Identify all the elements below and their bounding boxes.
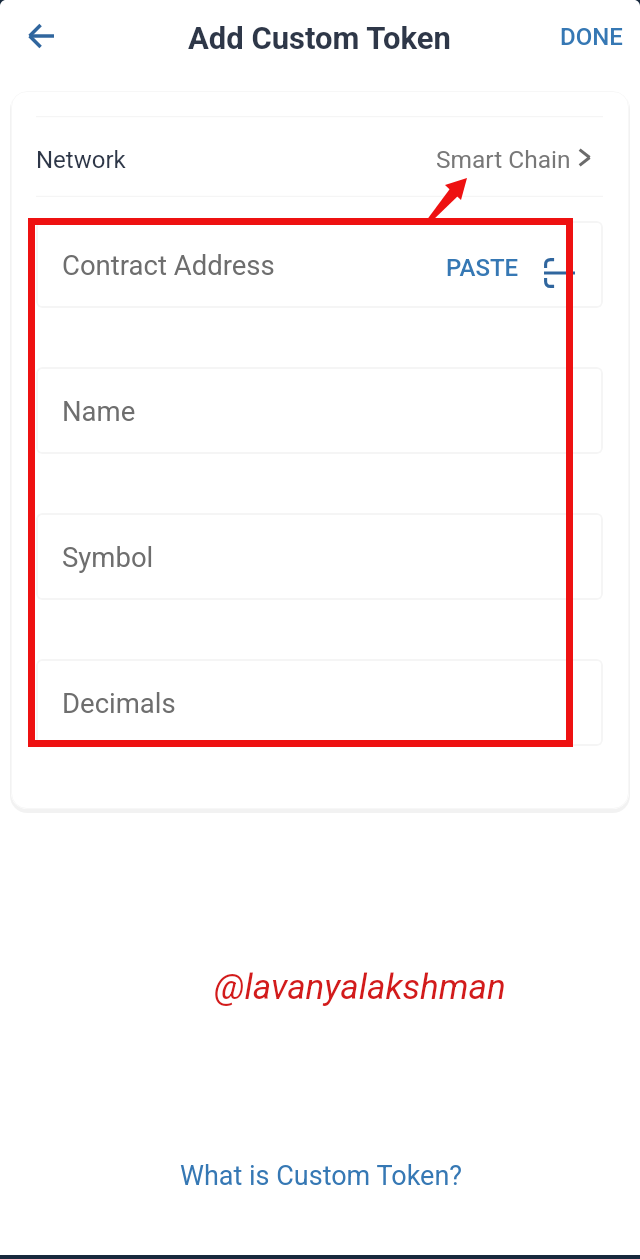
button[interactable]: Scan QR code (544, 258, 575, 288)
staticText: Smart Chain (436, 145, 571, 174)
button[interactable]: Name (36, 367, 603, 454)
staticText: Add Custom Token (188, 20, 451, 56)
button[interactable]: Contract Address (36, 221, 603, 308)
staticText: Name (62, 395, 136, 427)
button[interactable]: Symbol (36, 513, 603, 600)
button[interactable]: DONE (542, 9, 640, 65)
button[interactable]: Network (36, 116, 603, 197)
staticText: Contract Address (62, 249, 275, 281)
staticText: Network (36, 146, 126, 174)
staticText: DONE (560, 23, 623, 51)
staticText: PASTE (446, 254, 519, 282)
staticText: Symbol (62, 541, 154, 573)
button[interactable]: Back (12, 7, 70, 65)
button[interactable]: Decimals (36, 659, 603, 746)
button[interactable]: PASTE (424, 240, 541, 296)
button[interactable]: What is Custom Token? (156, 1146, 487, 1206)
staticText: @lavanyalakshman (214, 967, 506, 1008)
staticText: What is Custom Token? (180, 1160, 463, 1192)
staticText: Decimals (62, 687, 176, 719)
